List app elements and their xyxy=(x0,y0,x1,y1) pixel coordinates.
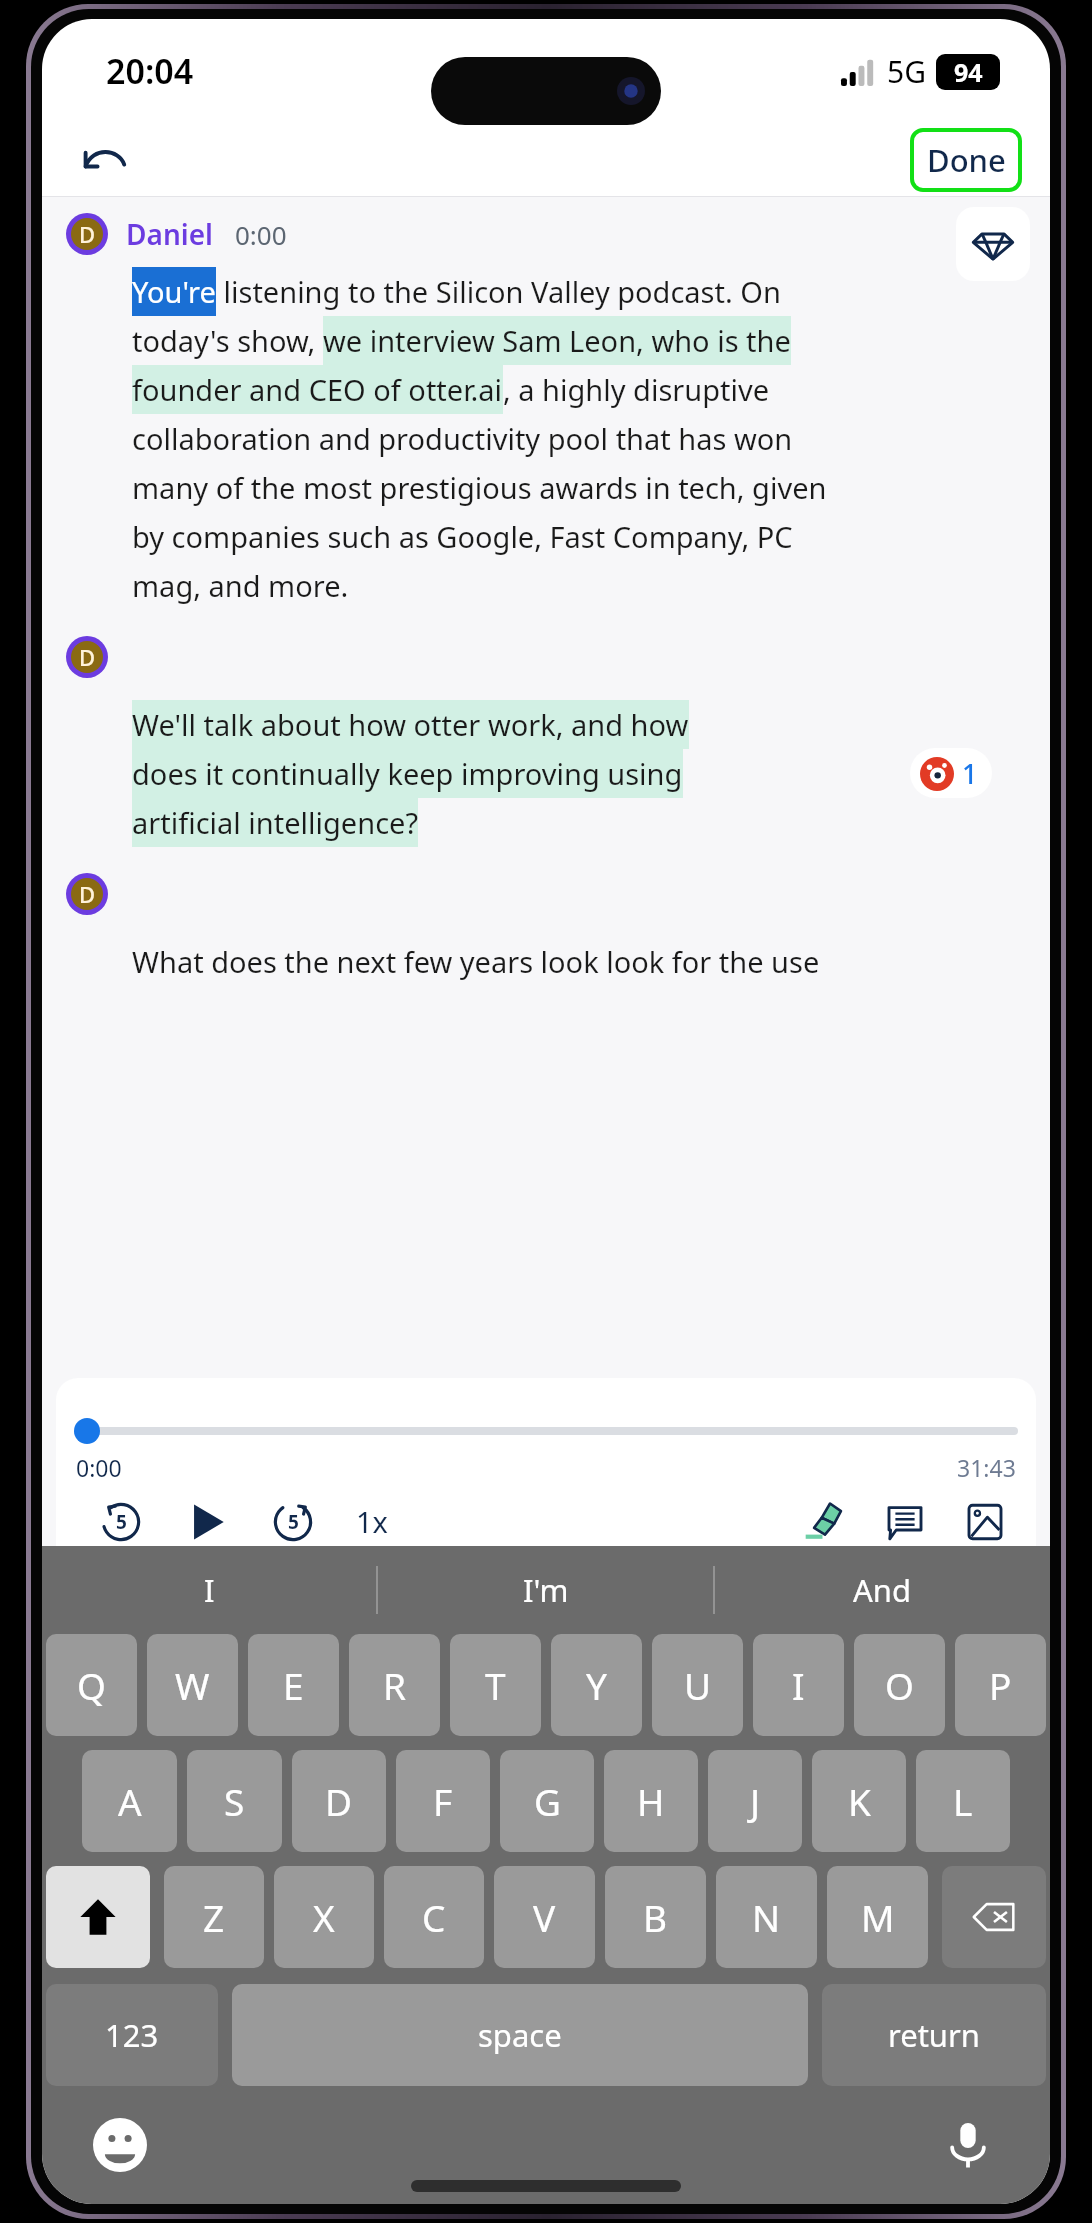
staticText: T xyxy=(485,1660,506,1710)
button[interactable]: X xyxy=(274,1866,374,1968)
button[interactable]: Backspace xyxy=(942,1866,1046,1968)
button[interactable]: U xyxy=(652,1634,743,1736)
staticText: P xyxy=(989,1660,1012,1710)
button[interactable]: Q xyxy=(46,1634,137,1736)
button[interactable]: V xyxy=(494,1866,595,1968)
button[interactable]: I'm xyxy=(378,1546,713,1634)
staticText: artificial intelligence? xyxy=(132,803,418,842)
button[interactable]: Comment xyxy=(876,1497,934,1546)
staticText: D xyxy=(79,219,96,249)
button[interactable]: Y xyxy=(551,1634,642,1736)
staticText: D xyxy=(79,642,96,672)
staticText: 0:00 xyxy=(235,217,287,252)
button[interactable]: H xyxy=(604,1750,698,1852)
staticText: C xyxy=(422,1892,446,1942)
button[interactable]: Play xyxy=(178,1497,236,1546)
staticText: 5 xyxy=(288,1509,299,1535)
staticText: D xyxy=(79,879,96,909)
button[interactable]: Forward 5 seconds xyxy=(264,1497,322,1546)
staticText: many of the most prestigious awards in t… xyxy=(132,468,827,507)
staticText: Daniel xyxy=(126,215,213,253)
button[interactable]: P xyxy=(955,1634,1046,1736)
button[interactable]: W xyxy=(147,1634,238,1736)
staticText: I'm xyxy=(523,1569,569,1611)
staticText: F xyxy=(433,1776,453,1826)
staticText: D xyxy=(325,1776,353,1826)
staticText: does it continually keep improving using xyxy=(132,754,683,793)
staticText: N xyxy=(752,1892,781,1942)
button[interactable]: Shift xyxy=(46,1866,150,1968)
staticText: space xyxy=(478,2014,562,2056)
staticText: M xyxy=(861,1892,895,1942)
button[interactable]: T xyxy=(450,1634,541,1736)
button[interactable]: N xyxy=(716,1866,817,1968)
button[interactable]: Done xyxy=(910,128,1022,192)
staticText: by companies such as Google, Fast Compan… xyxy=(132,517,793,556)
button[interactable]: L xyxy=(916,1750,1010,1852)
staticText: 5 xyxy=(116,1509,127,1535)
staticText: we interview Sam Leon, who is the xyxy=(323,321,791,360)
staticText: collaboration and productivity pool that… xyxy=(132,419,793,458)
staticText: H xyxy=(637,1776,665,1826)
button[interactable]: E xyxy=(248,1634,339,1736)
button[interactable]: Undo xyxy=(74,130,134,190)
button[interactable]: A xyxy=(82,1750,177,1852)
staticText: I xyxy=(204,1569,215,1611)
staticText: U xyxy=(684,1660,712,1710)
button[interactable]: Add image xyxy=(956,1497,1014,1546)
staticText: 0:00 xyxy=(76,1452,122,1483)
staticText: 123 xyxy=(105,2014,159,2056)
staticText: What does the next few years look look f… xyxy=(132,942,820,981)
button[interactable]: O xyxy=(854,1634,945,1736)
staticText: 94 xyxy=(954,55,983,89)
button[interactable]: space xyxy=(232,1984,808,2086)
button[interactable]: F xyxy=(396,1750,490,1852)
button[interactable]: I xyxy=(42,1546,376,1634)
button[interactable]: B xyxy=(605,1866,706,1968)
button[interactable]: Dictate xyxy=(936,2113,1000,2177)
staticText: You're xyxy=(132,272,216,311)
button[interactable]: S xyxy=(187,1750,282,1852)
staticText: Z xyxy=(203,1892,225,1942)
button[interactable]: I xyxy=(753,1634,844,1736)
button[interactable]: Seek xyxy=(74,1418,100,1444)
button[interactable]: M xyxy=(827,1866,928,1968)
button[interactable]: G xyxy=(500,1750,594,1852)
staticText: And xyxy=(853,1569,912,1611)
button[interactable]: 1x xyxy=(344,1497,400,1546)
staticText: L xyxy=(953,1776,973,1826)
staticText: G xyxy=(534,1776,561,1826)
button[interactable]: Upgrade xyxy=(956,207,1030,281)
staticText: E xyxy=(283,1660,304,1710)
staticText: X xyxy=(313,1892,335,1942)
button[interactable]: R xyxy=(349,1634,440,1736)
staticText: We'll talk about how otter work, and how xyxy=(132,705,689,744)
staticText: mag, and more. xyxy=(132,566,349,605)
staticText: return xyxy=(888,2014,980,2056)
staticText: 31:43 xyxy=(957,1452,1016,1483)
button[interactable]: K xyxy=(812,1750,906,1852)
button[interactable]: D xyxy=(292,1750,386,1852)
button[interactable]: And xyxy=(715,1546,1050,1634)
button[interactable]: Highlight xyxy=(796,1497,854,1546)
button[interactable]: Rewind 5 seconds xyxy=(92,1497,150,1546)
staticText: S xyxy=(224,1776,245,1826)
button[interactable]: Emoji xyxy=(88,2113,152,2177)
staticText: 1x xyxy=(356,1502,388,1541)
button[interactable]: return xyxy=(822,1984,1046,2086)
button[interactable]: C xyxy=(384,1866,484,1968)
button[interactable]: 1 xyxy=(910,748,992,798)
button[interactable]: J xyxy=(708,1750,802,1852)
staticText: listening to the Silicon Valley podcast.… xyxy=(216,272,781,311)
staticText: A xyxy=(118,1776,142,1826)
staticText: O xyxy=(885,1660,914,1710)
staticText: 1 xyxy=(962,755,978,792)
staticText: I xyxy=(792,1660,805,1710)
staticText: Y xyxy=(586,1660,607,1710)
staticText: 20:04 xyxy=(106,48,194,94)
staticText: R xyxy=(383,1660,407,1710)
staticText: V xyxy=(533,1892,556,1942)
staticText: 5G xyxy=(887,51,926,92)
button[interactable]: 123 xyxy=(46,1984,218,2086)
button[interactable]: Z xyxy=(164,1866,264,1968)
